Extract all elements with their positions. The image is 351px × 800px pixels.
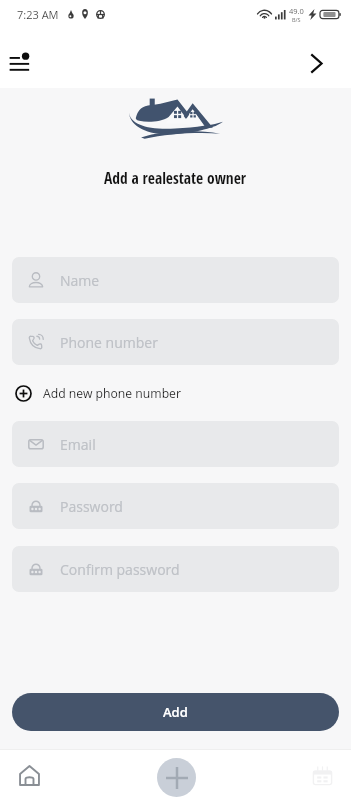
staticText: Password: [60, 497, 123, 516]
staticText: Confirm password: [60, 560, 180, 579]
button[interactable]: Password: [12, 483, 339, 529]
button[interactable]: Name: [12, 257, 339, 303]
button[interactable]: Confirm password: [12, 546, 339, 592]
staticText: B/S: [292, 16, 301, 23]
button[interactable]: Add: [12, 693, 339, 731]
staticText: Name: [60, 271, 100, 290]
staticText: Phone number: [60, 333, 158, 352]
staticText: 7:23 AM: [17, 7, 59, 22]
staticText: Add new phone number: [43, 385, 181, 402]
staticText: Email: [60, 435, 96, 454]
button[interactable]: Phone number: [12, 319, 339, 365]
button[interactable]: Add: [157, 758, 196, 797]
staticText: 49.0: [289, 6, 304, 16]
staticText: Add: [163, 703, 188, 721]
button[interactable]: Home: [9, 755, 49, 795]
button[interactable]: Calendar: [302, 755, 342, 795]
button[interactable]: Email: [12, 421, 339, 467]
button[interactable]: Add new phone number: [15, 365, 181, 421]
button[interactable]: Next: [304, 51, 328, 75]
staticText: Add a realestate owner: [104, 167, 247, 188]
button[interactable]: Menu: [0, 41, 39, 80]
